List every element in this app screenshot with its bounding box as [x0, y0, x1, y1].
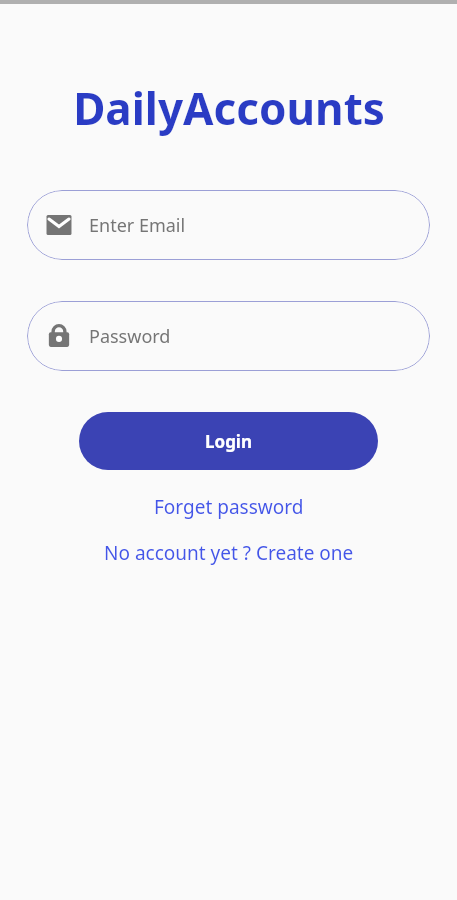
staticText: Login: [205, 430, 253, 453]
button[interactable]: Password: [27, 301, 430, 371]
other: Email: [45, 211, 73, 239]
staticText: No account yet ? Create one: [104, 540, 354, 566]
button[interactable]: No account yet ? Create one: [94, 536, 364, 570]
staticText: DailyAccounts: [73, 78, 385, 138]
other: Password: [45, 322, 73, 350]
staticText: Forget password: [154, 494, 304, 520]
staticText: Password: [89, 324, 171, 349]
staticText: Enter Email: [89, 213, 186, 238]
button[interactable]: Forget password: [144, 490, 314, 524]
button[interactable]: Email: [27, 190, 430, 260]
button[interactable]: Login: [79, 412, 378, 470]
